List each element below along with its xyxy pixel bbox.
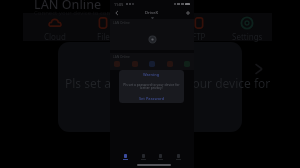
staticText: LAN Online [113,21,130,25]
staticText: Cloud [44,31,66,42]
staticText: Pls set a password to your device for be… [123,82,180,90]
button[interactable]: Set Password [139,96,165,101]
button[interactable]: Back [113,9,120,16]
button[interactable]: App [149,61,155,67]
button[interactable]: Add [184,9,191,16]
staticText: Warning [143,72,160,77]
staticText: Connect your device to continue [34,9,125,17]
button[interactable]: Device [123,154,128,160]
button[interactable]: App [184,61,190,67]
button[interactable]: File [79,16,127,42]
button[interactable]: FTP [175,16,223,42]
staticText: DriveX [145,10,159,16]
button[interactable]: Me [176,154,181,160]
staticText: File [97,31,110,42]
button[interactable]: Settings [223,16,271,42]
button[interactable]: App [132,61,138,67]
button[interactable]: Transfer [158,154,163,160]
button[interactable]: App [167,61,173,67]
button[interactable]: Files [141,154,146,160]
staticText: 11:05 [114,2,124,7]
staticText: Pls set a password to your device for [65,75,271,91]
button[interactable]: App [114,61,120,67]
staticText: FTP [192,31,206,42]
staticText: Settings [232,31,263,42]
staticText: LAN Online [113,55,130,59]
button[interactable]: Cloud [31,16,79,42]
staticText: LAN Online [34,0,102,13]
